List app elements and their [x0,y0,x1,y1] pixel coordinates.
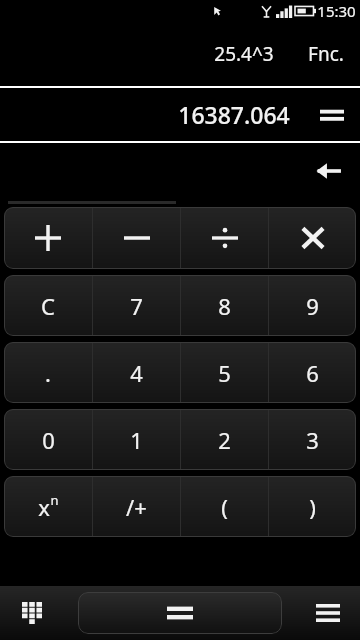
button[interactable]: 1 [93,409,180,470]
staticText: 8 [218,291,231,321]
staticText: 9 [306,291,319,321]
button[interactable]: ( [181,476,268,537]
button[interactable]: 0 [4,409,92,470]
button[interactable]: 2 [181,409,268,470]
staticText: C [41,291,55,321]
button[interactable]: ) [269,476,356,537]
button[interactable] [4,207,92,269]
staticText: x [38,492,50,522]
button[interactable]: . [4,342,92,403]
button[interactable]: 9 [269,275,356,336]
button[interactable]: 4 [93,342,180,403]
staticText: /+ [126,492,147,522]
button[interactable]: Keypad [8,589,56,637]
staticText: ) [309,492,316,522]
staticText: 0 [42,425,55,455]
staticText: 2 [218,425,231,455]
button[interactable] [93,207,180,269]
button[interactable]: Backspace [312,154,346,188]
staticText: 25.4^3 [214,41,274,67]
button[interactable]: /+ [93,476,180,537]
button[interactable]: Equals [78,592,282,634]
button[interactable]: C [4,275,92,336]
staticText: 7 [130,291,143,321]
staticText: Fnc. [308,41,344,67]
staticText: ( [221,492,228,522]
staticText: 16387.064 [178,99,290,130]
other: Equals [320,103,344,127]
button[interactable]: 8 [181,275,268,336]
staticText: 4 [130,358,143,388]
button[interactable]: x [4,476,92,537]
button[interactable]: 5 [181,342,268,403]
button[interactable] [181,207,268,269]
button[interactable]: Menu [304,589,352,637]
staticText: . [45,358,51,388]
button[interactable]: 7 [93,275,180,336]
button[interactable]: 6 [269,342,356,403]
button[interactable] [269,207,356,269]
staticText: 6 [306,358,319,388]
staticText: 5 [218,358,231,388]
staticText: 3 [306,425,319,455]
staticText: n [50,491,59,509]
staticText: 15:30 [317,1,356,21]
button[interactable]: 3 [269,409,356,470]
staticText: 1 [130,425,143,455]
